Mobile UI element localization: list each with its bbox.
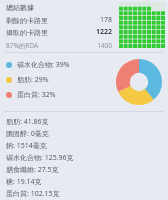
staticText: 膽固醇: 0毫克 [6,129,49,139]
staticText: 攝取的卡路里 [6,28,48,37]
button[interactable]: 蛋白質: 32% [6,90,56,100]
staticText: 碳水化合物: 39% [17,60,70,70]
button[interactable]: 碳水化合物: 39% [6,60,70,70]
staticText: 總結數據 [6,3,34,12]
staticText: 脂肪: 29% [17,75,49,85]
staticText: 蛋白質: 102.15克 [6,189,60,199]
staticText: 脂肪: 41.86克 [6,117,49,127]
staticText: 碳水化合物: 125.96克 [6,153,74,163]
button[interactable]: 總結數據 [0,0,168,52]
staticText: 1400 [97,41,112,50]
staticText: 剩餘的卡路里 [6,16,48,25]
staticText: 1222 [95,27,112,37]
staticText: 87%的RDA [6,41,39,50]
button[interactable]: 碳水化合物: 39% [0,53,168,111]
staticText: 糖: 19.14克 [6,177,42,187]
staticText: 178 [99,15,112,25]
staticText: 蛋白質: 32% [17,90,56,100]
staticText: 膳食纖維: 27.5克 [6,165,59,175]
staticText: 鈉: 1514毫克 [6,141,47,151]
button[interactable]: 脂肪: 29% [6,75,49,85]
